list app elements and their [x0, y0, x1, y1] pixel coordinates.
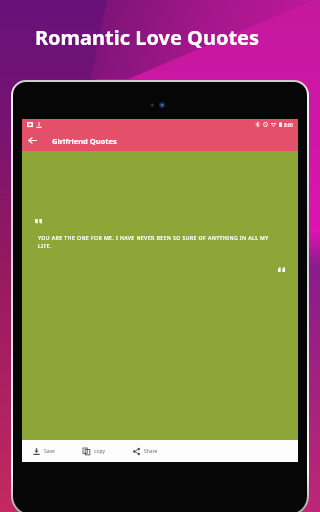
staticText: Girlfriend Quotes: [52, 136, 117, 146]
staticText: Romantic Love Quotes: [35, 24, 260, 51]
staticText: Save: [44, 448, 55, 455]
button[interactable]: Back: [22, 130, 43, 151]
button[interactable]: Share: [131, 444, 160, 459]
staticText: Share: [144, 448, 158, 455]
staticText: YOU ARE THE ONE FOR ME. I HAVE NEVER BEE…: [38, 234, 282, 250]
button[interactable]: Save: [31, 444, 57, 459]
button[interactable]: copy: [81, 444, 107, 459]
staticText: copy: [94, 448, 105, 455]
staticText: 8:06: [284, 122, 293, 128]
